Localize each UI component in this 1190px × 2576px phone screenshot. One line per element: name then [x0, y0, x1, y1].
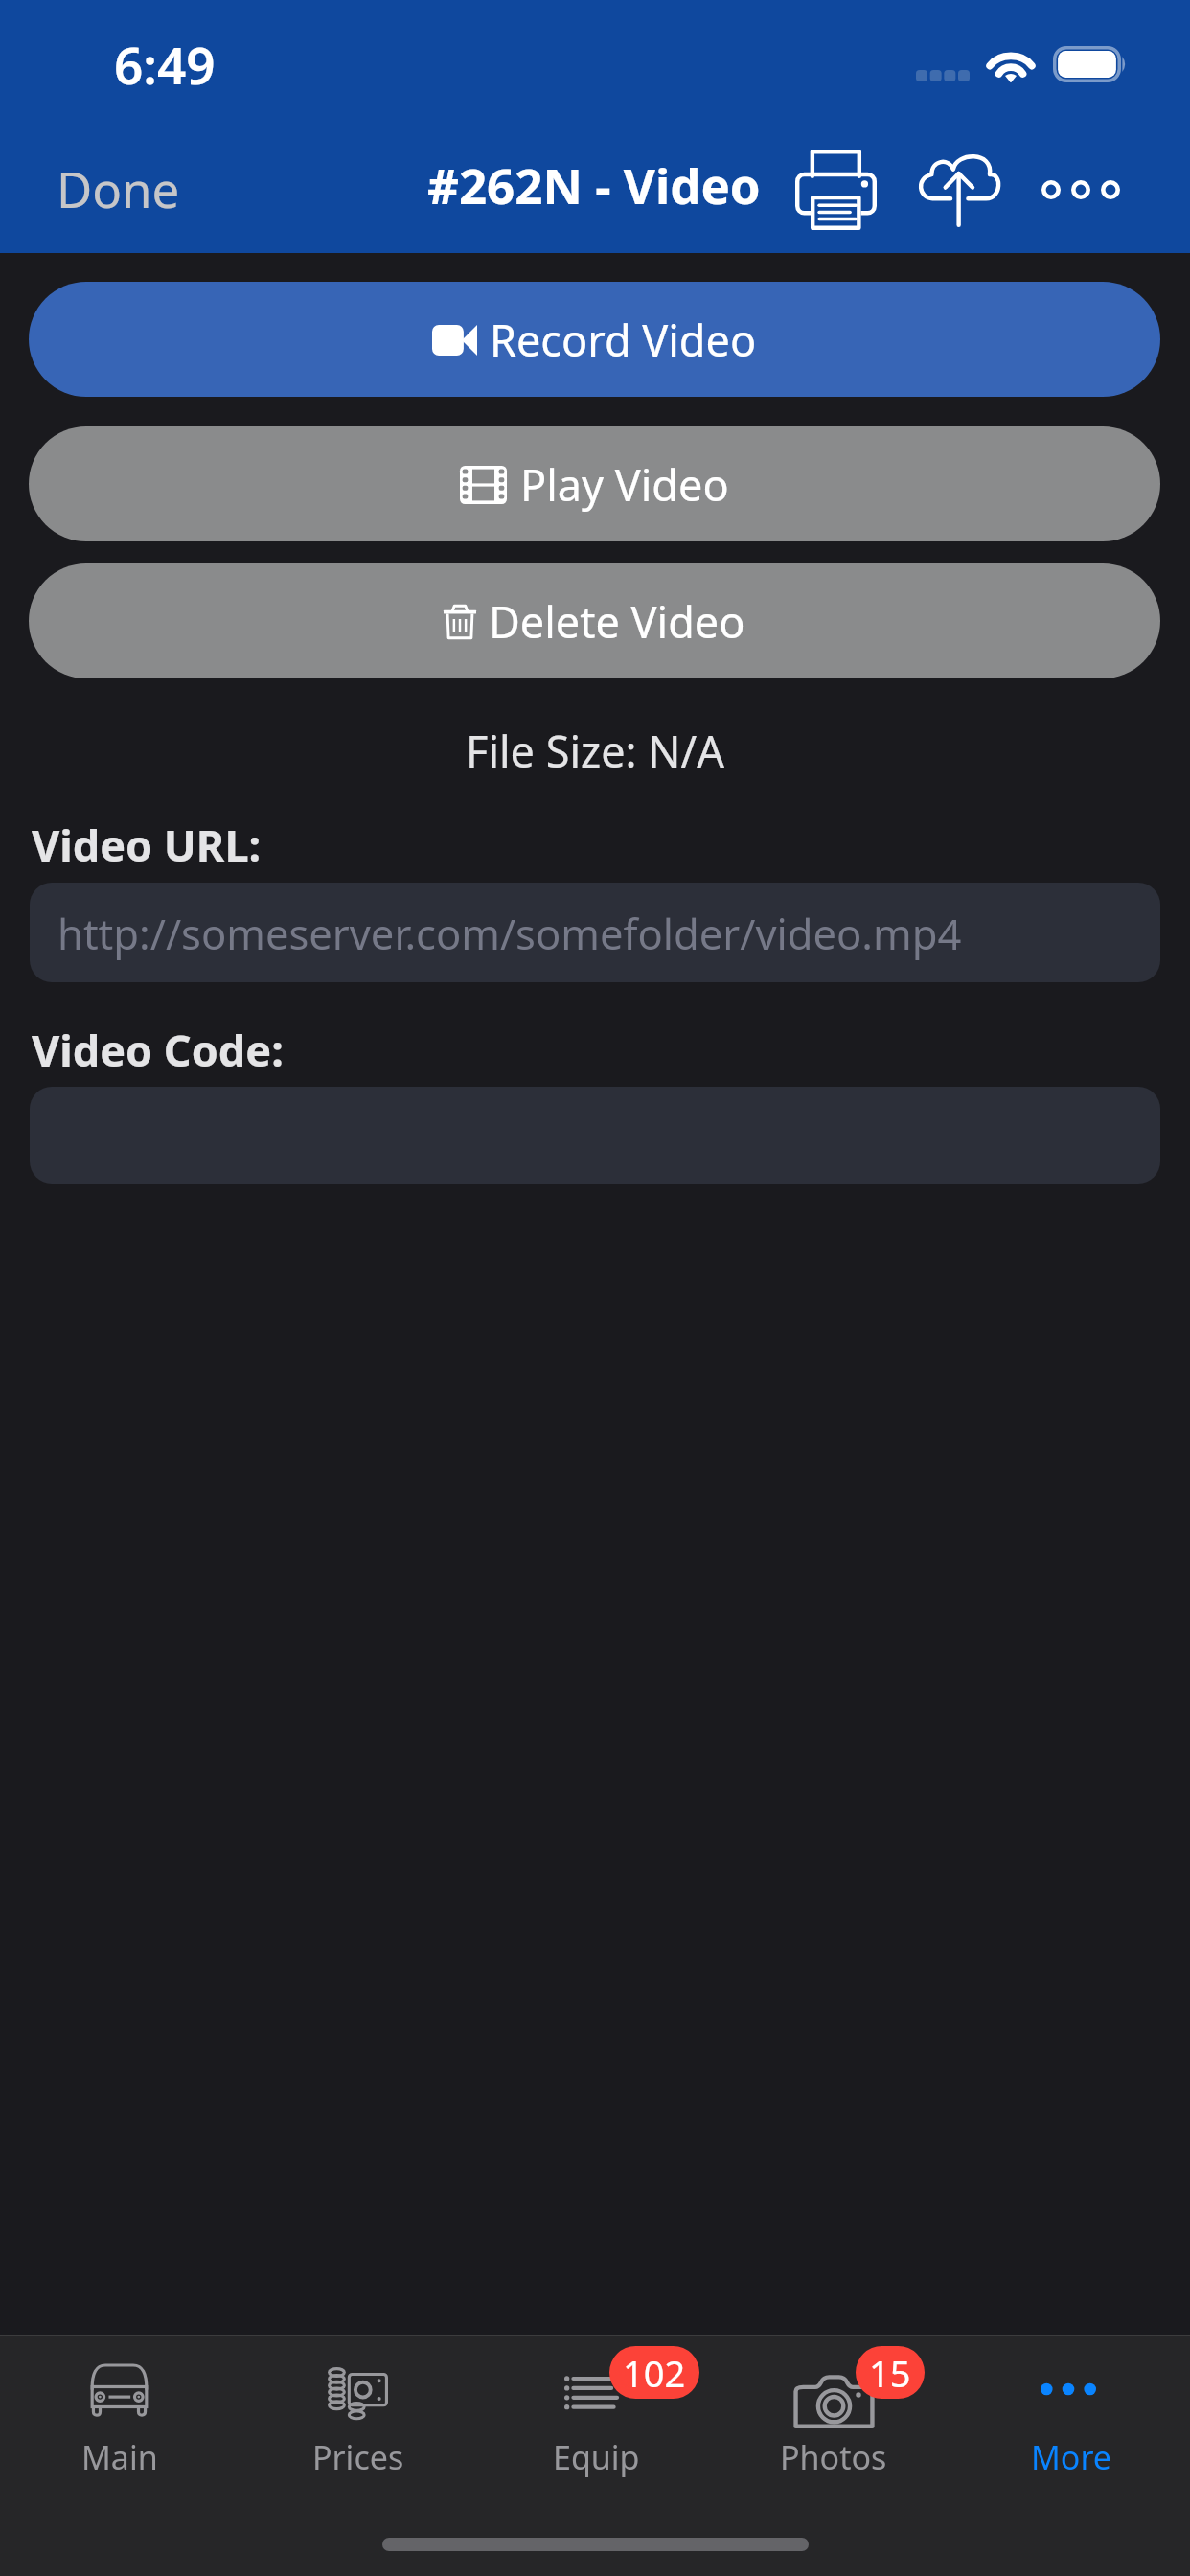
button[interactable]: Record Video	[29, 282, 1160, 397]
button[interactable]: Prices	[239, 2336, 477, 2490]
staticText: Play Video	[520, 455, 729, 514]
staticText: 6:49	[114, 30, 216, 99]
staticText: More	[1031, 2435, 1111, 2479]
staticText: Video URL:	[32, 816, 262, 874]
button[interactable]: Play Video	[29, 426, 1160, 541]
button[interactable]: Print	[785, 136, 886, 232]
staticText: Photos	[780, 2435, 887, 2479]
button[interactable]: More options	[1028, 136, 1133, 232]
staticText: Record Video	[490, 310, 757, 369]
staticText: Video Code:	[32, 1021, 284, 1079]
button[interactable]: 15	[715, 2336, 952, 2490]
staticText: 102	[623, 2348, 686, 2398]
staticText: http://someserver.com/somefolder/video.m…	[57, 905, 962, 961]
button[interactable]: 102	[477, 2336, 715, 2490]
button[interactable]: Delete Video	[29, 563, 1160, 678]
staticText: 15	[869, 2348, 911, 2398]
staticText: Prices	[312, 2435, 404, 2479]
staticText: File Size: N/A	[0, 722, 1190, 780]
staticText: Equip	[553, 2435, 640, 2479]
staticText: #262N - Video	[427, 151, 761, 218]
button[interactable]: Upload to cloud	[908, 136, 1010, 232]
button[interactable]: http://someserver.com/somefolder/video.m…	[30, 883, 1160, 982]
button[interactable]: More	[952, 2336, 1190, 2490]
staticText: Delete Video	[489, 592, 745, 651]
button[interactable]: Main	[0, 2336, 239, 2490]
staticText: Done	[57, 155, 180, 221]
staticText: Main	[81, 2435, 158, 2479]
button[interactable]: Done	[37, 138, 199, 239]
